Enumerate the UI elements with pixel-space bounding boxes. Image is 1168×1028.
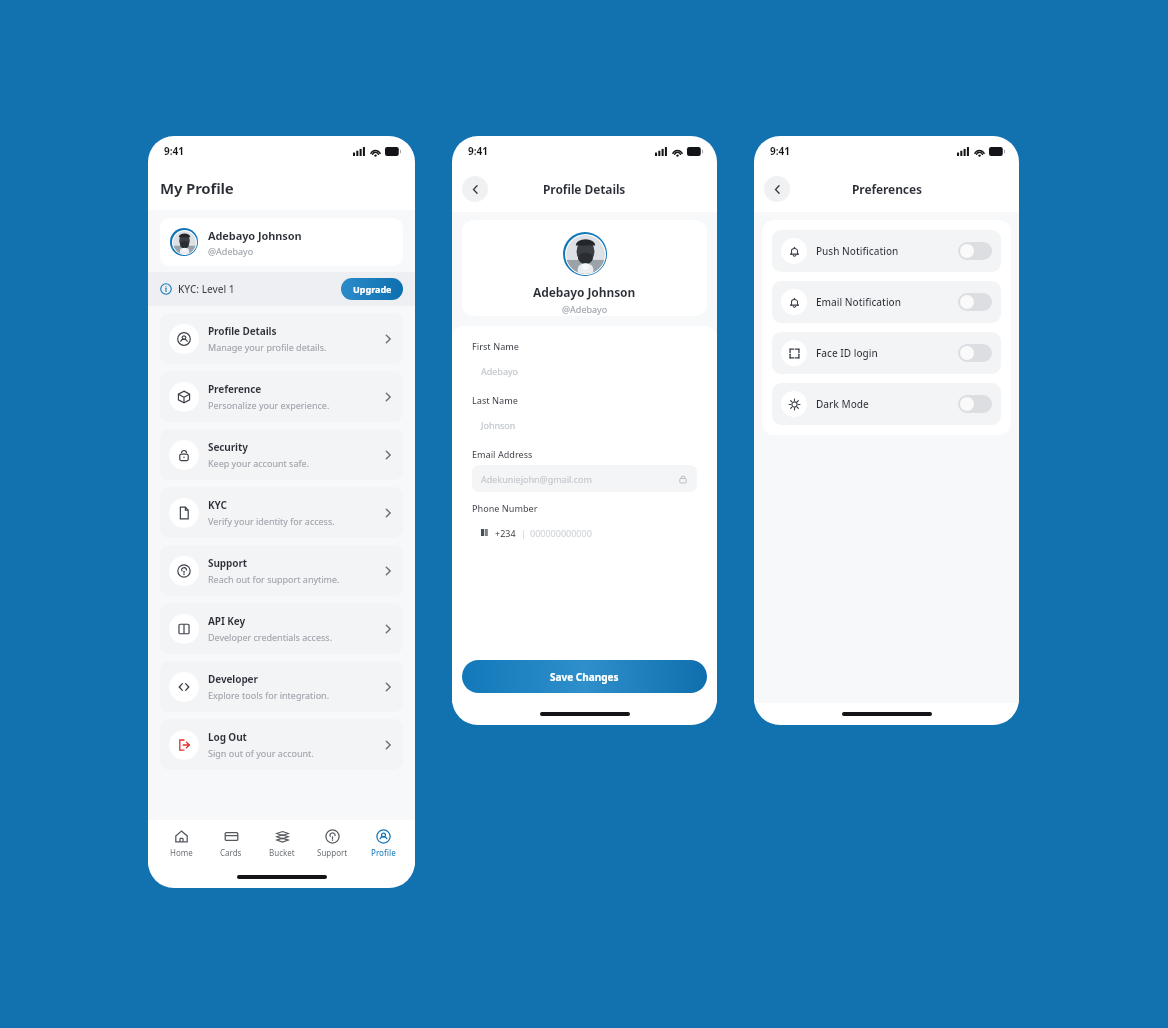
button[interactable]: Support <box>160 545 403 596</box>
button[interactable]: Upgrade <box>341 278 403 300</box>
staticText: @Adebayo <box>562 303 608 315</box>
button[interactable]: Home <box>157 829 205 858</box>
button[interactable]: Adebayo Johnson <box>160 218 403 266</box>
staticText: Profile <box>371 847 396 858</box>
button[interactable]: Dark Mode <box>772 383 1001 425</box>
staticText: Johnson <box>481 419 516 431</box>
button[interactable]: Johnson <box>472 411 697 438</box>
staticText: Dark Mode <box>816 397 958 411</box>
staticText: Last Name <box>472 394 518 406</box>
staticText: Explore tools for integration. <box>208 689 330 701</box>
staticText: Support <box>208 556 248 570</box>
staticText: Log Out <box>208 730 247 744</box>
staticText: Developer <box>208 672 258 686</box>
button[interactable]: Log Out <box>160 719 403 770</box>
button[interactable]: Cards <box>207 829 255 858</box>
staticText: Profile Details <box>543 181 626 197</box>
button[interactable]: Profile Details <box>160 313 403 364</box>
button[interactable]: +234 <box>472 519 697 546</box>
staticText: 9:41 <box>770 144 790 158</box>
staticText: 9:41 <box>468 144 488 158</box>
staticText: Verify your identity for access. <box>208 515 335 527</box>
button[interactable]: Preference <box>160 371 403 422</box>
staticText: KYC: Level 1 <box>178 282 235 296</box>
button[interactable]: Bucket <box>258 829 306 858</box>
button[interactable]: Save Changes <box>462 660 707 693</box>
staticText: My Profile <box>160 178 234 198</box>
staticText: 000000000000 <box>530 527 592 539</box>
staticText: Adebayo Johnson <box>208 228 302 243</box>
staticText: Adebayo <box>481 365 518 377</box>
staticText: Developer credentials access. <box>208 631 333 643</box>
button[interactable]: Back <box>462 176 488 202</box>
staticText: KYC <box>208 498 227 512</box>
staticText: Face ID login <box>816 346 958 360</box>
staticText: | <box>521 527 526 539</box>
staticText: Reach out for support anytime. <box>208 573 340 585</box>
staticText: Support <box>317 847 348 858</box>
staticText: 9:41 <box>164 144 184 158</box>
staticText: Save Changes <box>550 670 619 684</box>
staticText: @Adebayo <box>208 245 254 257</box>
button[interactable]: Email Notification <box>772 281 1001 323</box>
staticText: Personalize your experience. <box>208 399 330 411</box>
staticText: Sign out of your account. <box>208 747 314 759</box>
staticText: Home <box>170 847 193 858</box>
button[interactable]: API Key <box>160 603 403 654</box>
staticText: Adebayo Johnson <box>533 284 636 300</box>
button[interactable]: Back <box>764 176 790 202</box>
staticText: Email Address <box>472 448 533 460</box>
button[interactable]: Push Notification <box>772 230 1001 272</box>
staticText: Preferences <box>852 181 922 197</box>
staticText: Upgrade <box>353 283 392 295</box>
button[interactable]: Security <box>160 429 403 480</box>
staticText: API Key <box>208 614 246 628</box>
button[interactable]: Profile <box>359 829 407 858</box>
button[interactable]: Adebayo <box>472 357 697 384</box>
staticText: First Name <box>472 340 519 352</box>
button[interactable]: Support <box>308 829 356 858</box>
staticText: Phone Number <box>472 502 538 514</box>
staticText: Keep your account safe. <box>208 457 310 469</box>
staticText: Manage your profile details. <box>208 341 327 353</box>
staticText: Security <box>208 440 248 454</box>
staticText: Preference <box>208 382 262 396</box>
button[interactable]: Developer <box>160 661 403 712</box>
button[interactable]: Face ID login <box>772 332 1001 374</box>
staticText: +234 <box>495 527 516 539</box>
staticText: Bucket <box>269 847 295 858</box>
staticText: Push Notification <box>816 244 958 258</box>
staticText: Profile Details <box>208 324 277 338</box>
staticText: Email Notification <box>816 295 958 309</box>
button[interactable]: KYC <box>160 487 403 538</box>
staticText: Cards <box>220 847 242 858</box>
staticText: Adekuniejohn@gmail.com <box>481 473 592 485</box>
button[interactable]: Adekuniejohn@gmail.com <box>472 465 697 492</box>
